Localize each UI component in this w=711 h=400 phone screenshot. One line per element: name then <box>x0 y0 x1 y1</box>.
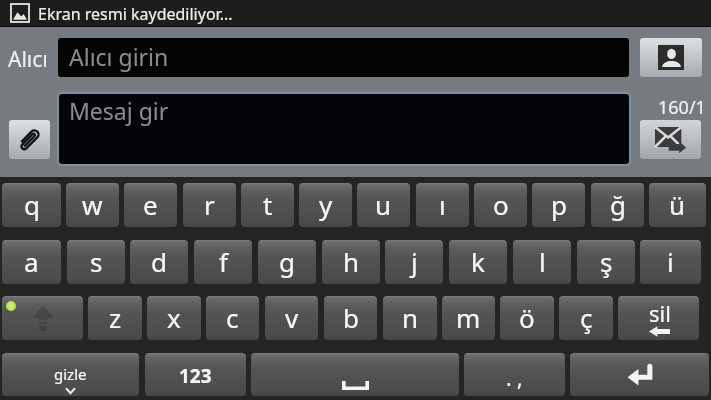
staticText: k <box>471 244 485 279</box>
staticText: j <box>411 244 418 279</box>
staticText: o <box>493 187 509 222</box>
button[interactable]: y <box>299 183 352 227</box>
button[interactable]: ç <box>559 296 613 340</box>
button[interactable]: s <box>67 240 125 284</box>
staticText: s <box>90 244 103 279</box>
staticText: f <box>219 244 228 279</box>
button[interactable]: v <box>265 296 318 340</box>
staticText: b <box>343 300 359 335</box>
button[interactable]: w <box>66 183 119 227</box>
button[interactable]: c <box>206 296 259 340</box>
staticText: w <box>82 187 103 222</box>
button[interactable]: Kişiler <box>640 38 702 77</box>
staticText: z <box>109 300 122 335</box>
button[interactable]: e <box>124 183 177 227</box>
staticText: l <box>539 244 546 279</box>
button[interactable]: x <box>147 296 201 340</box>
button[interactable]: l <box>513 240 571 284</box>
staticText: Mesaj gir <box>69 95 169 126</box>
staticText: d <box>151 244 167 279</box>
staticText: 123 <box>179 363 212 389</box>
button[interactable]: u <box>357 183 410 227</box>
button[interactable]: ö <box>500 296 554 340</box>
button[interactable]: ı <box>416 183 469 227</box>
staticText: m <box>456 300 481 335</box>
staticText: ö <box>519 300 535 335</box>
button[interactable]: Gönder <box>640 120 701 159</box>
button[interactable]: i <box>640 240 701 284</box>
button[interactable]: z <box>88 296 142 340</box>
staticText: h <box>343 244 360 279</box>
staticText: ı <box>439 187 446 222</box>
button[interactable]: Alıcı girin <box>58 38 629 77</box>
staticText: sil <box>649 298 671 328</box>
button[interactable]: Enter <box>570 353 709 396</box>
button[interactable]: f <box>194 240 252 284</box>
button[interactable]: Shift <box>2 296 83 340</box>
staticText: c <box>226 300 239 335</box>
button[interactable]: t <box>241 183 294 227</box>
staticText: ü <box>669 187 686 222</box>
staticText: t <box>263 187 273 222</box>
staticText: ğ <box>610 187 626 222</box>
button[interactable]: ş <box>577 240 635 284</box>
button[interactable]: ğ <box>591 183 644 227</box>
staticText: u <box>375 187 392 222</box>
staticText: ç <box>580 300 593 335</box>
staticText: Ekran resmi kaydediliyor... <box>38 3 233 25</box>
staticText: g <box>279 244 295 279</box>
button[interactable]: p <box>532 183 585 227</box>
button[interactable]: Sil <box>618 296 699 340</box>
button[interactable]: o <box>474 183 527 227</box>
staticText: x <box>167 300 181 335</box>
staticText: e <box>143 187 158 222</box>
button[interactable]: n <box>383 296 437 340</box>
button[interactable]: m <box>442 296 495 340</box>
staticText: n <box>402 300 419 335</box>
button[interactable]: Ekle <box>9 120 50 159</box>
button[interactable]: ü <box>649 183 706 227</box>
button[interactable]: a <box>2 240 61 284</box>
button[interactable]: h <box>322 240 380 284</box>
staticText: ş <box>600 244 613 279</box>
button[interactable]: Mesaj gir <box>59 94 629 164</box>
staticText: y <box>319 187 333 222</box>
button[interactable]: . , <box>464 353 565 396</box>
staticText: a <box>24 244 39 279</box>
staticText: Alıcı girin <box>69 41 169 72</box>
button[interactable]: d <box>130 240 188 284</box>
button[interactable]: gizle <box>2 353 139 396</box>
button[interactable]: 123 <box>145 353 246 396</box>
button[interactable]: q <box>2 183 61 227</box>
staticText: i <box>667 244 674 279</box>
staticText: v <box>285 300 299 335</box>
staticText: r <box>204 187 215 222</box>
staticText: . , <box>506 364 523 393</box>
staticText: q <box>24 187 40 222</box>
staticText: 160/1 <box>658 95 706 120</box>
staticText: gizle <box>54 364 87 384</box>
staticText: p <box>551 187 567 222</box>
button[interactable]: b <box>324 296 377 340</box>
button[interactable]: r <box>183 183 236 227</box>
staticText: Alıcı <box>8 45 48 74</box>
button[interactable]: g <box>258 240 316 284</box>
button[interactable]: j <box>385 240 443 284</box>
button[interactable]: k <box>449 240 507 284</box>
button[interactable]: Boşluk <box>251 353 459 396</box>
